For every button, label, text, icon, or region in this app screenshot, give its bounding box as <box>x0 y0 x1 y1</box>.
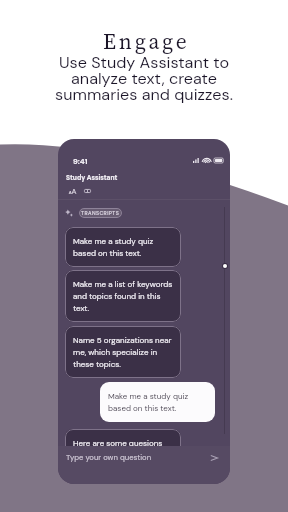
staticText: Name 5 organizations near me, which spec… <box>73 335 172 369</box>
staticText: Make me a study quiz based on this text. <box>108 391 189 413</box>
staticText: Engage <box>103 27 190 56</box>
staticText: Type your own question <box>66 452 152 462</box>
button[interactable]: Reader <box>84 189 91 193</box>
button[interactable]: Make me a study quiz based on this text. <box>100 382 215 422</box>
button[interactable]: Make me a study quiz based on this text. <box>65 227 181 267</box>
staticText: Study Assistant <box>66 173 118 182</box>
button[interactable]: Text size <box>69 189 76 194</box>
staticText: TRANSCRIPTS <box>81 210 120 217</box>
staticText: Make me a list of keywords and topics fo… <box>73 279 173 313</box>
staticText: Make me a study quiz based on this text. <box>73 236 154 258</box>
staticText: 9:41 <box>73 156 88 166</box>
button[interactable]: Send <box>209 453 219 463</box>
staticText: Use Study Assistant to analyze text, cre… <box>55 52 233 105</box>
button[interactable]: Here are some quesions <box>65 429 181 465</box>
staticText: Here are some quesions <box>73 438 163 448</box>
button[interactable]: Make me a list of keywords and topics fo… <box>65 270 181 322</box>
button[interactable]: TRANSCRIPTS <box>79 208 122 218</box>
button[interactable]: Name 5 organizations near me, which spec… <box>65 326 181 378</box>
